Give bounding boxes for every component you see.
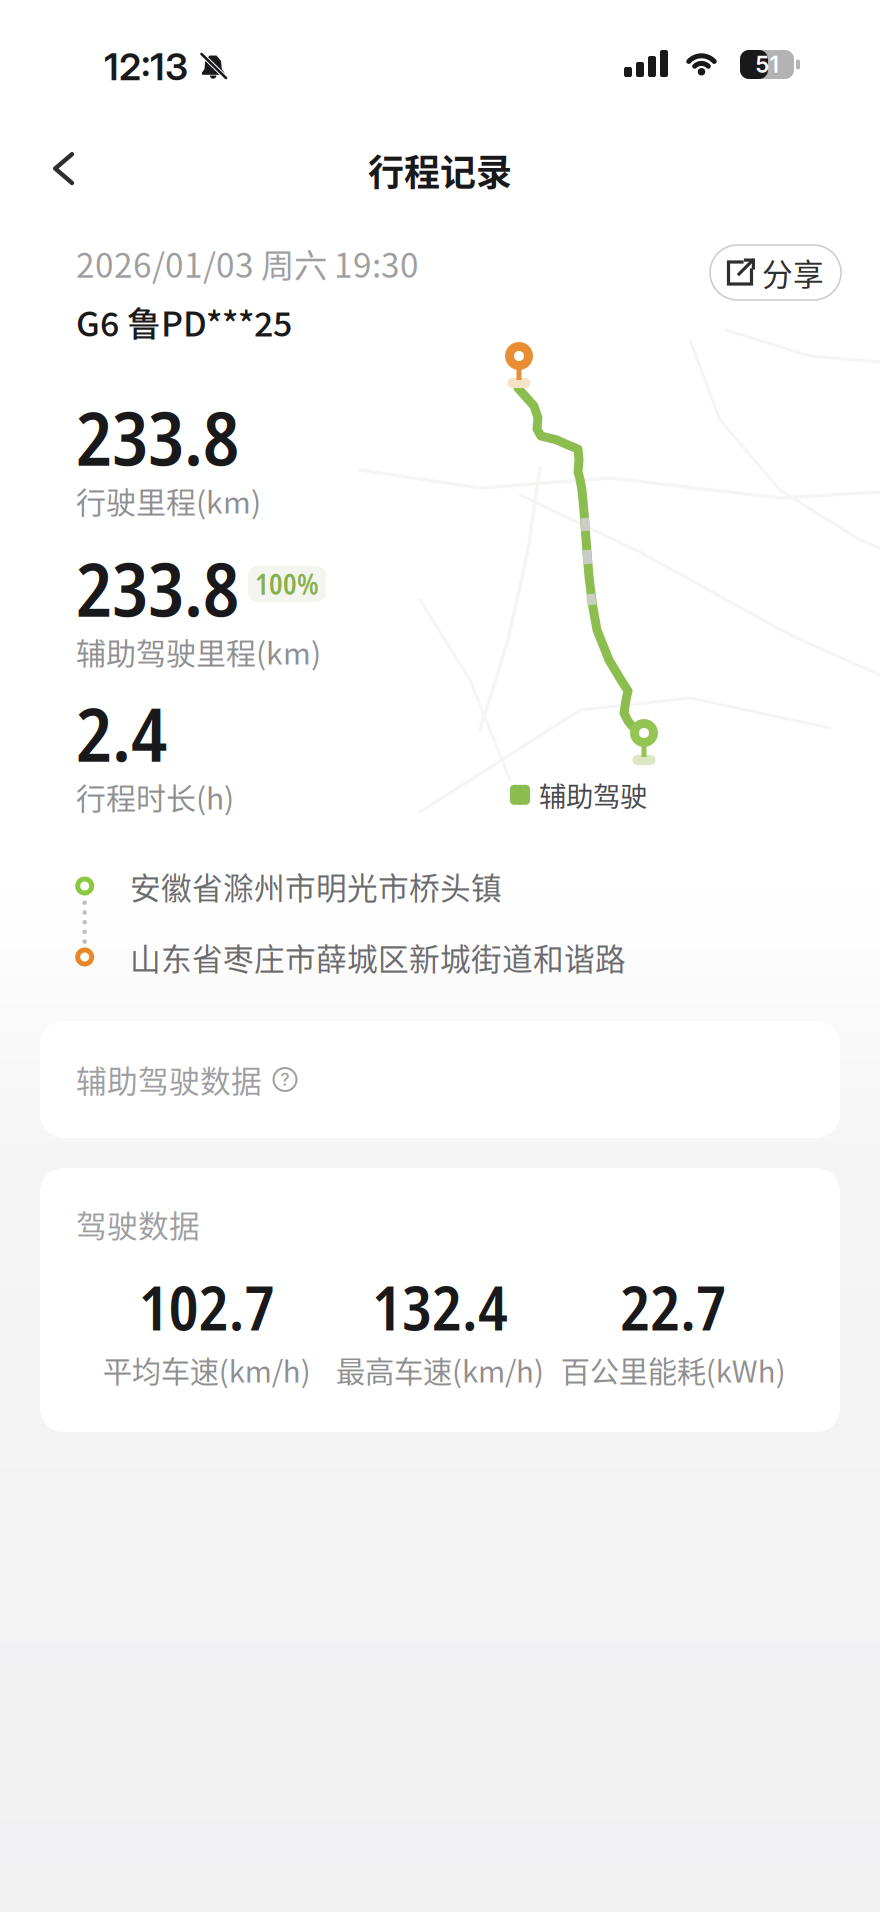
staticText: 分享 xyxy=(762,250,824,295)
staticText: 辅助驾驶 xyxy=(539,775,647,815)
staticText: 最高车速(km/h) xyxy=(336,1348,544,1391)
staticText: 安徽省滁州市明光市桥头镇 xyxy=(130,864,502,908)
button[interactable]: Back xyxy=(0,132,114,205)
staticText: 100% xyxy=(255,565,319,603)
staticText: 辅助驾驶数据 xyxy=(76,1057,262,1102)
staticText: 平均车速(km/h) xyxy=(103,1348,311,1391)
staticText: 22.7 xyxy=(620,1265,726,1348)
staticText: G6 鲁PD***25 xyxy=(76,297,292,346)
staticText: 行驶里程(km) xyxy=(76,479,261,522)
staticText: ? xyxy=(280,1069,289,1090)
staticText: 行程记录 xyxy=(368,144,512,196)
staticText: 山东省枣庄市薛城区新城街道和谐路 xyxy=(130,935,626,979)
staticText: 51 xyxy=(755,51,778,78)
staticText: 驾驶数据 xyxy=(76,1202,200,1246)
button[interactable]: 辅助驾驶数据 xyxy=(40,1021,840,1138)
button[interactable]: 分享 xyxy=(710,245,841,300)
staticText: 102.7 xyxy=(139,1265,275,1348)
staticText: 12:13 xyxy=(104,44,188,89)
staticText: 行程时长(h) xyxy=(76,775,234,818)
staticText: 132.4 xyxy=(372,1265,508,1348)
staticText: 233.8 xyxy=(76,386,239,488)
staticText: 233.8 xyxy=(76,537,239,639)
staticText: 辅助驾驶里程(km) xyxy=(76,630,321,673)
staticText: 百公里能耗(kWh) xyxy=(561,1348,786,1391)
staticText: 2026/01/03 周六 19:30 xyxy=(76,239,419,287)
staticText: 2.4 xyxy=(76,682,167,784)
